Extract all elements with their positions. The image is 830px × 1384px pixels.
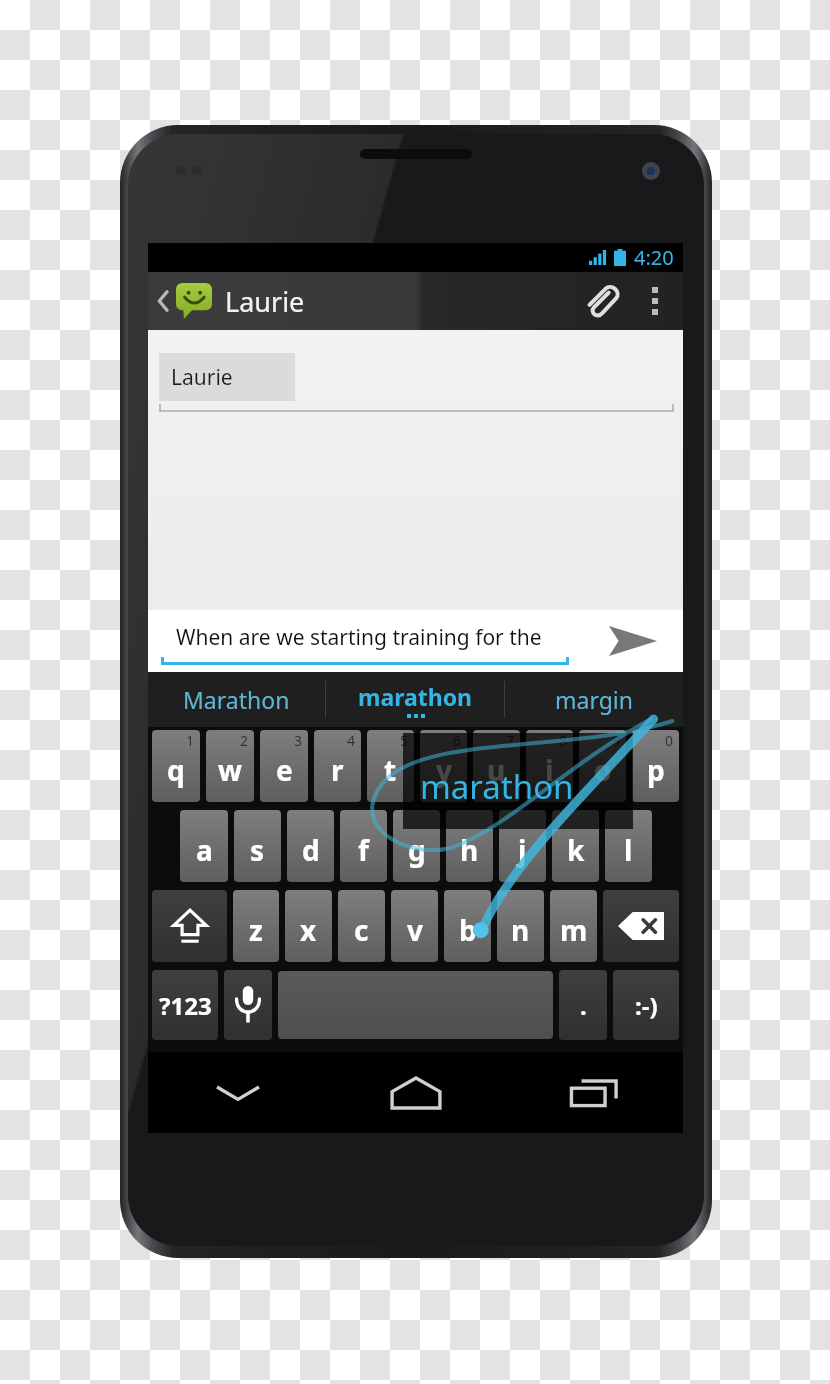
staticText: o — [594, 751, 612, 789]
button[interactable]: margin — [505, 672, 683, 727]
staticText: 0 — [665, 731, 674, 750]
staticText: margin — [555, 684, 633, 715]
button[interactable]: c — [338, 890, 385, 962]
button[interactable]: s — [234, 810, 281, 882]
button[interactable]: b — [444, 890, 491, 962]
button[interactable]: 3 — [260, 730, 308, 802]
staticText: n — [511, 911, 530, 949]
staticText: 8 — [559, 731, 568, 750]
staticText: . — [580, 989, 587, 1022]
button[interactable]: 0 — [632, 730, 679, 802]
staticText: 2 — [240, 731, 249, 750]
staticText: 5 — [400, 731, 409, 750]
staticText: 3 — [294, 731, 303, 750]
staticText: w — [218, 751, 242, 789]
staticText: t — [384, 751, 397, 789]
button[interactable]: g — [393, 810, 440, 882]
staticText: s — [250, 831, 265, 869]
staticText: Laurie — [171, 363, 233, 392]
button[interactable]: l — [605, 810, 652, 882]
button[interactable]: Voice input — [224, 970, 272, 1040]
button[interactable]: d — [287, 810, 334, 882]
button[interactable]: Delete — [603, 890, 679, 962]
button[interactable]: ?123 — [152, 970, 218, 1040]
staticText: i — [545, 751, 554, 789]
button[interactable]: f — [340, 810, 387, 882]
button[interactable]: Space — [278, 971, 553, 1039]
button[interactable]: m — [550, 890, 597, 962]
staticText: j — [518, 831, 527, 869]
button[interactable]: a — [180, 810, 228, 882]
button[interactable]: Laurie — [159, 353, 295, 401]
button[interactable]: z — [233, 890, 279, 962]
button[interactable]: h — [446, 810, 493, 882]
staticText: When are we starting training for the — [176, 623, 542, 652]
button[interactable]: 5 — [367, 730, 414, 802]
staticText: Laurie — [225, 283, 305, 320]
staticText: v — [407, 911, 423, 949]
staticText: ?123 — [159, 989, 212, 1022]
staticText: 4:20 — [634, 244, 674, 271]
staticText: y — [436, 751, 452, 789]
button[interactable]: Hide keyboard — [148, 1052, 327, 1133]
button[interactable]: x — [285, 890, 332, 962]
button[interactable]: :-) — [613, 970, 679, 1040]
button[interactable]: 9 — [579, 730, 626, 802]
staticText: b — [459, 911, 477, 949]
button[interactable]: More options — [631, 272, 679, 330]
staticText: 6 — [453, 731, 462, 750]
staticText: z — [249, 911, 263, 949]
button[interactable]: . — [559, 970, 607, 1040]
staticText: d — [302, 831, 320, 869]
staticText: 1 — [186, 731, 195, 750]
button[interactable]: Marathon — [148, 672, 325, 727]
staticText: marathon — [358, 681, 473, 712]
staticText: 9 — [612, 731, 621, 750]
button[interactable]: n — [497, 890, 544, 962]
button[interactable]: When are we starting training for the — [148, 610, 583, 672]
button[interactable]: 2 — [206, 730, 254, 802]
button[interactable]: marathon — [326, 672, 504, 727]
staticText: c — [354, 911, 369, 949]
button[interactable]: Attach — [571, 272, 631, 330]
staticText: 4 — [347, 731, 356, 750]
button[interactable]: Send — [583, 610, 683, 672]
button[interactable]: k — [552, 810, 599, 882]
staticText: h — [460, 831, 479, 869]
button[interactable]: j — [499, 810, 546, 882]
staticText: 7 — [506, 731, 515, 750]
staticText: u — [487, 751, 506, 789]
staticText: g — [408, 831, 426, 869]
staticText: k — [567, 831, 585, 869]
button[interactable]: Recent apps — [505, 1052, 683, 1133]
staticText: r — [331, 751, 344, 789]
staticText: :-) — [635, 989, 658, 1022]
staticText: marathon — [420, 764, 574, 809]
button[interactable]: Shift — [152, 890, 227, 962]
staticText: p — [647, 751, 665, 789]
staticText: Marathon — [183, 684, 290, 715]
button[interactable]: 6 — [420, 730, 467, 802]
staticText: e — [276, 751, 293, 789]
other: Back — [157, 288, 170, 314]
staticText: l — [624, 831, 633, 869]
button[interactable]: 4 — [314, 730, 361, 802]
staticText: q — [167, 751, 185, 789]
button[interactable]: 8 — [526, 730, 573, 802]
button[interactable]: 7 — [473, 730, 520, 802]
staticText: f — [358, 831, 369, 869]
button[interactable]: Back — [153, 272, 309, 330]
button[interactable]: 1 — [152, 730, 200, 802]
staticText: m — [560, 911, 588, 949]
button[interactable]: v — [391, 890, 438, 962]
button[interactable]: Home — [327, 1052, 505, 1133]
staticText: x — [300, 911, 317, 949]
staticText: a — [196, 831, 213, 869]
